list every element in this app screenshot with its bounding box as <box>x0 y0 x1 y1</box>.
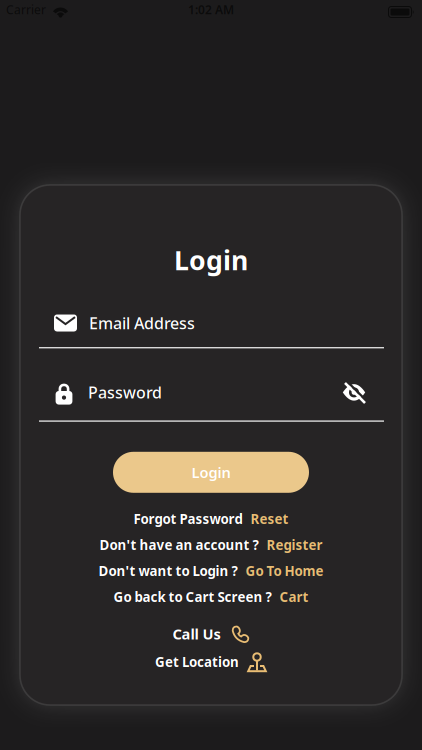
staticText: Go back to Cart Screen ? <box>113 588 271 606</box>
staticText: Reset <box>250 510 288 528</box>
button[interactable]: Go To Home <box>245 562 323 580</box>
staticText: Cart <box>279 588 308 606</box>
staticText: Call Us <box>172 624 220 644</box>
staticText: Carrier <box>6 1 46 17</box>
staticText: Login <box>174 242 248 278</box>
staticText: Get Location <box>155 653 239 671</box>
button[interactable]: Register <box>266 536 322 554</box>
button[interactable]: Call Us <box>172 621 249 647</box>
staticText: Password <box>88 382 162 403</box>
staticText: 1:02 AM <box>188 1 234 17</box>
staticText: Don't have an account ? <box>99 536 258 554</box>
staticText: Don't want to Login ? <box>98 562 237 580</box>
button[interactable]: Cart <box>279 588 308 606</box>
button[interactable]: Reset <box>250 510 288 528</box>
staticText: Email Address <box>89 312 195 334</box>
staticText: Register <box>266 536 322 554</box>
button[interactable]: Login <box>113 452 309 493</box>
staticText: Go To Home <box>245 562 323 580</box>
staticText: Forgot Password <box>133 510 242 528</box>
button[interactable]: Get Location <box>155 649 267 675</box>
staticText: Login <box>191 463 230 482</box>
button[interactable]: Show password <box>342 381 366 403</box>
